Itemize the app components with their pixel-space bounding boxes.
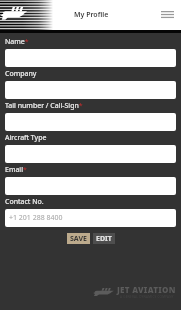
staticText: Company <box>5 69 37 79</box>
button[interactable]: EDIT <box>93 233 115 244</box>
staticText: SAVE <box>70 234 87 244</box>
button[interactable]: SAVE <box>67 233 90 244</box>
button[interactable] <box>5 177 176 195</box>
staticText: Contact No. <box>5 197 44 207</box>
staticText: Email* <box>5 165 27 175</box>
staticText: +1 201 288 8400 <box>9 213 63 223</box>
button[interactable] <box>5 81 176 99</box>
staticText: Aircraft Type <box>5 133 47 143</box>
button[interactable] <box>5 49 176 67</box>
staticText: Name* <box>5 37 29 47</box>
button[interactable] <box>5 113 176 131</box>
staticText: Tail number / Call-Sign* <box>5 101 83 111</box>
staticText: JET AVIATION <box>117 284 176 295</box>
button[interactable]: +1 201 288 8400 <box>5 209 176 227</box>
staticText: EDIT <box>96 234 112 244</box>
button[interactable]: Menu <box>158 5 176 23</box>
button[interactable] <box>5 145 176 163</box>
staticText: My Profile <box>74 10 109 20</box>
